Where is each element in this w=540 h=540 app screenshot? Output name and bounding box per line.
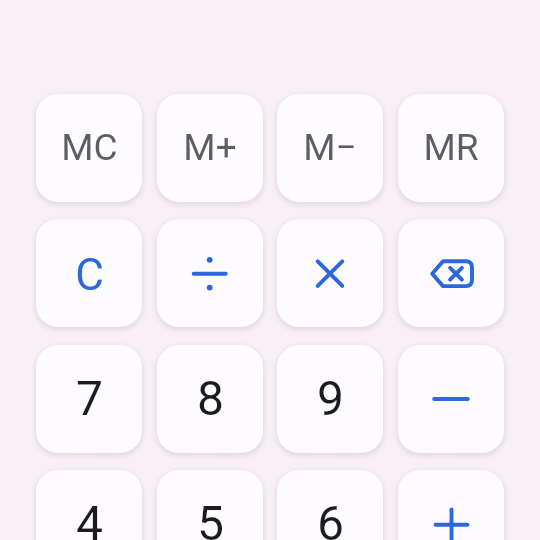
- staticText: 7: [76, 369, 103, 425]
- button[interactable]: MR: [398, 94, 504, 202]
- staticText: 8: [197, 369, 224, 425]
- staticText: 4: [76, 494, 103, 540]
- button[interactable]: 9: [277, 345, 383, 453]
- button[interactable]: M+: [157, 94, 263, 202]
- button[interactable]: 6: [277, 470, 383, 540]
- button[interactable]: 8: [157, 345, 263, 453]
- staticText: C: [75, 248, 104, 300]
- button[interactable]: Divide: [157, 219, 263, 327]
- button[interactable]: M−: [277, 94, 383, 202]
- staticText: M−: [303, 126, 357, 169]
- button[interactable]: Minus: [398, 345, 504, 453]
- staticText: M+: [183, 126, 237, 169]
- button[interactable]: 5: [157, 470, 263, 540]
- staticText: MR: [423, 126, 479, 169]
- button[interactable]: MC: [36, 94, 142, 202]
- staticText: MC: [61, 126, 118, 169]
- button[interactable]: 7: [36, 345, 142, 453]
- button[interactable]: Plus: [398, 470, 504, 540]
- button[interactable]: Backspace: [398, 219, 504, 327]
- staticText: 9: [317, 369, 344, 425]
- staticText: 5: [197, 494, 224, 540]
- button[interactable]: C: [36, 219, 142, 327]
- staticText: 6: [317, 494, 344, 540]
- button[interactable]: Multiply: [277, 219, 383, 327]
- button[interactable]: 4: [36, 470, 142, 540]
